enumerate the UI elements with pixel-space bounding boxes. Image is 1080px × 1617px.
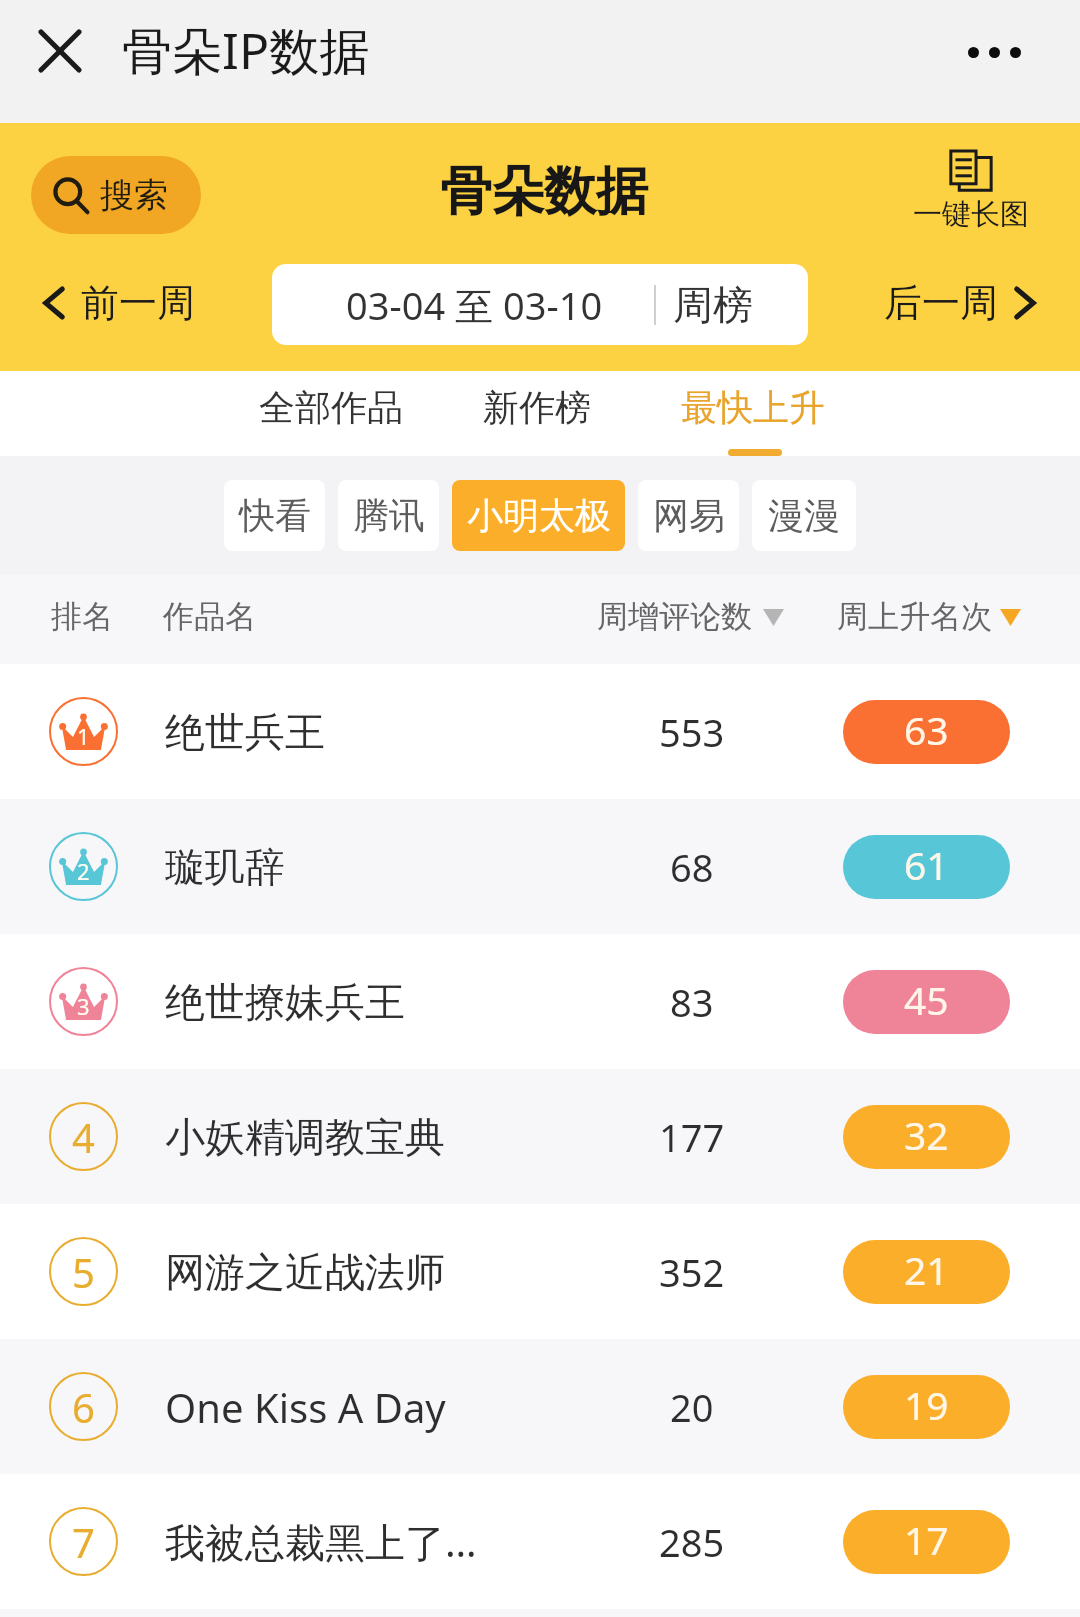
staticText: 4 — [72, 1110, 95, 1164]
button[interactable]: 7 — [0, 1474, 1080, 1609]
staticText: One Kiss A Day — [165, 1380, 585, 1434]
staticText: 网游之近战法师 — [165, 1247, 585, 1297]
staticText: 后一周 — [884, 279, 998, 327]
staticText: 一键长图 — [913, 196, 1029, 233]
staticText: 排名 — [51, 597, 113, 636]
staticText: 6 — [72, 1380, 95, 1434]
staticText: 周榜 — [673, 280, 753, 330]
staticText: 周增评论数 — [597, 597, 752, 636]
button[interactable]: 2 — [0, 799, 1080, 934]
staticText: 553 — [659, 706, 725, 758]
staticText: 搜索 — [100, 174, 168, 217]
staticText: 璇玑辞 — [165, 842, 585, 892]
staticText: 新作榜 — [483, 385, 591, 430]
button[interactable]: 5 — [0, 1204, 1080, 1339]
button[interactable]: 新作榜 — [479, 371, 595, 456]
staticText: 腾讯 — [353, 493, 425, 538]
staticText: 漫漫 — [768, 493, 840, 538]
staticText: 21 — [904, 1243, 949, 1296]
staticText: 骨朵数据 — [440, 159, 648, 225]
staticText: 5 — [72, 1245, 95, 1299]
staticText: 7 — [72, 1515, 95, 1569]
staticText: 小妖精调教宝典 — [165, 1112, 585, 1162]
staticText: 绝世兵王 — [165, 707, 585, 757]
staticText: 19 — [904, 1378, 949, 1431]
button[interactable]: Close — [15, 6, 105, 96]
staticText: 绝世撩妹兵王 — [165, 977, 585, 1027]
staticText: 1 — [77, 721, 90, 751]
staticText: 352 — [659, 1246, 725, 1298]
staticText: 快看 — [239, 493, 311, 538]
button[interactable]: 最快上升 — [676, 371, 830, 456]
button[interactable]: 漫漫 — [752, 480, 856, 551]
staticText: 骨朵IP数据 — [122, 16, 370, 84]
staticText: 3 — [77, 991, 90, 1021]
button[interactable]: 4 — [0, 1069, 1080, 1204]
staticText: 83 — [670, 976, 714, 1028]
staticText: 全部作品 — [259, 385, 403, 430]
staticText: 177 — [659, 1111, 725, 1163]
staticText: 285 — [659, 1516, 725, 1568]
staticText: 32 — [904, 1108, 949, 1161]
staticText: 前一周 — [81, 279, 195, 327]
button[interactable]: 一键长图 — [905, 141, 1037, 233]
button[interactable]: 全部作品 — [254, 371, 408, 456]
button[interactable]: 搜索 — [31, 156, 201, 234]
button[interactable]: 6 — [0, 1339, 1080, 1474]
button[interactable]: 1 — [0, 664, 1080, 799]
button[interactable]: 周上升名次 — [837, 597, 1021, 636]
button[interactable]: 腾讯 — [338, 480, 439, 551]
button[interactable]: 网易 — [638, 480, 739, 551]
staticText: 68 — [670, 841, 714, 893]
staticText: 20 — [670, 1381, 714, 1433]
button[interactable]: 后一周 — [880, 275, 1042, 331]
staticText: 我被总裁黑上了… — [165, 1514, 585, 1569]
staticText: 周上升名次 — [837, 597, 992, 636]
button[interactable]: 前一周 — [37, 275, 199, 331]
button[interactable]: 小明太极 — [452, 480, 625, 551]
button[interactable]: 3 — [0, 934, 1080, 1069]
staticText: 63 — [904, 703, 949, 756]
staticText: 61 — [904, 838, 949, 891]
staticText: 最快上升 — [681, 385, 825, 430]
button[interactable]: 03-04 至 03-10 — [272, 264, 808, 345]
staticText: 作品名 — [163, 597, 256, 636]
staticText: 2 — [77, 856, 90, 886]
staticText: 小明太极 — [467, 493, 611, 538]
button[interactable]: More options — [943, 17, 1045, 87]
button[interactable]: 快看 — [224, 480, 325, 551]
staticText: 17 — [904, 1513, 949, 1566]
staticText: 网易 — [653, 493, 725, 538]
staticText: 45 — [904, 973, 949, 1026]
button[interactable]: 周增评论数 — [597, 597, 784, 636]
staticText: 03-04 至 03-10 — [346, 279, 603, 331]
